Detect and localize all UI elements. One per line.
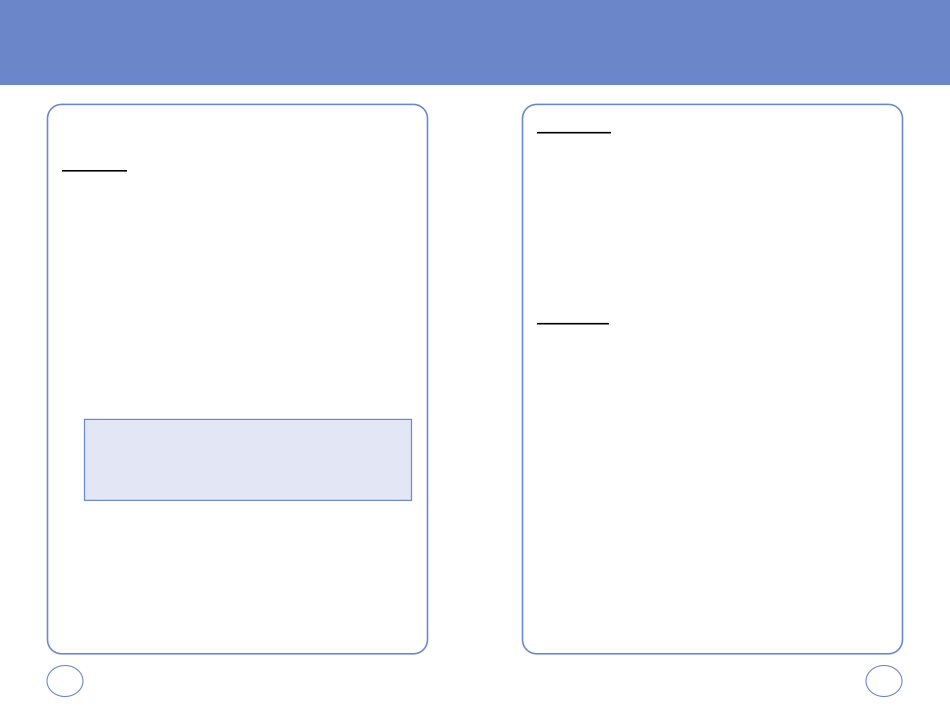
- button[interactable]: Text field: [84, 419, 411, 500]
- button[interactable]: Previous page: [47, 665, 83, 696]
- button[interactable]: Next page: [866, 665, 902, 696]
